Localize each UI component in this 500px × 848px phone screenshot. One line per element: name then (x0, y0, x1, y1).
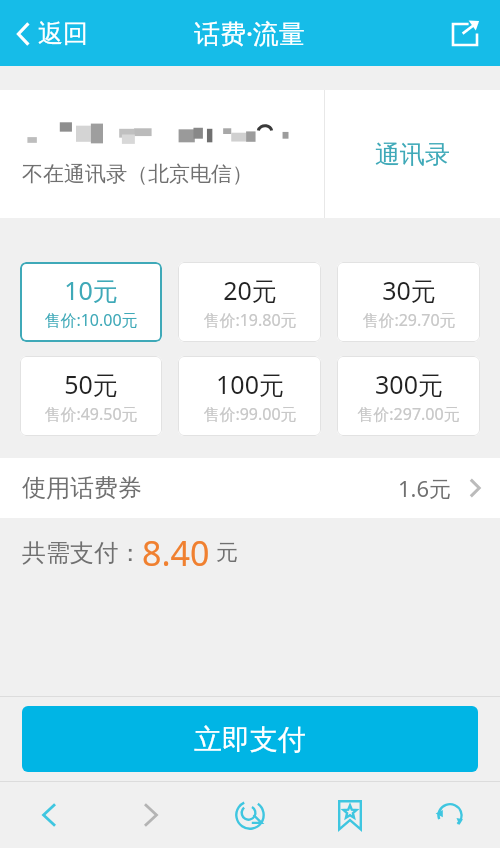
staticText: 元 (216, 539, 238, 567)
button[interactable]: 300元 (337, 356, 480, 436)
staticText: 30元 (382, 273, 436, 307)
staticText: 不在通讯录（北京电信） (22, 161, 253, 187)
button[interactable]: 使用话费券 (0, 458, 500, 518)
button[interactable]: Bookmark (300, 782, 400, 848)
button[interactable]: 立即支付 (22, 706, 478, 772)
button[interactable]: 50元 (20, 356, 162, 436)
button[interactable]: 通讯录 (325, 90, 500, 218)
button[interactable]: Forward (100, 782, 200, 848)
staticText: 立即支付 (194, 722, 306, 757)
staticText: 返回 (38, 18, 88, 49)
staticText: 售价:29.70元 (362, 309, 456, 331)
staticText: 售价:99.00元 (203, 403, 297, 425)
button[interactable]: Refresh (400, 782, 500, 848)
staticText: 售价:49.50元 (44, 403, 138, 425)
staticText: 10元 (64, 273, 118, 307)
button[interactable]: Share (444, 12, 486, 54)
button[interactable]: 10元 (20, 262, 162, 342)
button[interactable]: Back (0, 782, 100, 848)
button[interactable]: 100元 (178, 356, 321, 436)
staticText: 1.6元 (398, 473, 452, 503)
button[interactable]: 20元 (178, 262, 321, 342)
staticText: 售价:297.00元 (357, 403, 460, 425)
staticText: 100元 (216, 367, 284, 401)
staticText: 300元 (375, 367, 443, 401)
button[interactable]: 不在通讯录（北京电信） (0, 90, 324, 218)
staticText: 通讯录 (375, 139, 450, 170)
staticText: 售价:19.80元 (203, 309, 297, 331)
staticText: 共需支付： (22, 538, 142, 568)
staticText: 售价:10.00元 (44, 309, 138, 331)
button[interactable]: Search (200, 782, 300, 848)
staticText: 使用话费券 (22, 473, 142, 503)
button[interactable]: 返回 (8, 12, 94, 55)
staticText: 话费·流量 (194, 15, 306, 51)
staticText: 8.40 (142, 530, 210, 576)
staticText: 20元 (223, 273, 277, 307)
button[interactable]: 30元 (337, 262, 480, 342)
staticText: 50元 (64, 367, 118, 401)
